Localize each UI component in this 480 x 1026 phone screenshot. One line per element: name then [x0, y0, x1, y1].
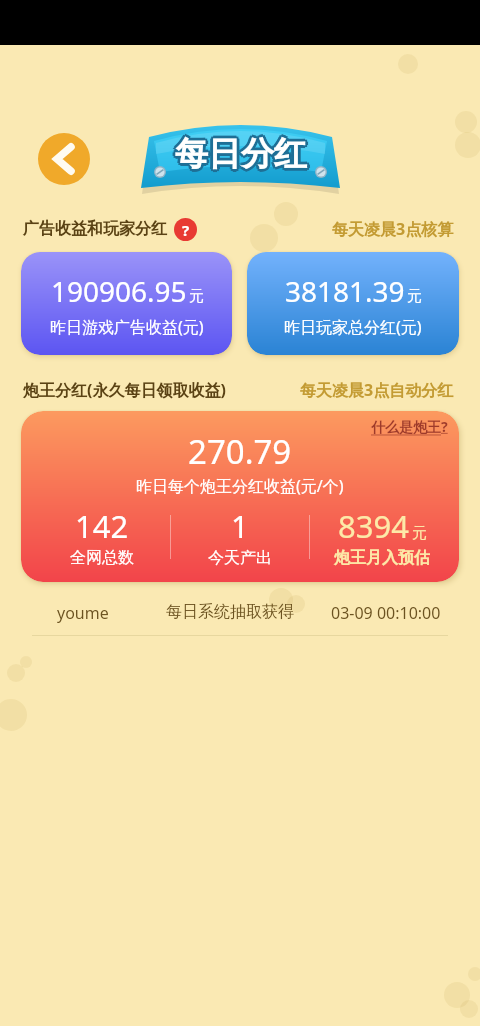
- staticText: 元: [189, 287, 204, 306]
- staticText: 1: [231, 505, 249, 547]
- staticText: 什么是炮王?: [371, 417, 448, 436]
- staticText: 8394: [338, 505, 409, 547]
- staticText: 每日分红: [175, 130, 307, 172]
- staticText: 每日分红: [173, 135, 305, 177]
- staticText: 03-09 00:10:00: [331, 602, 441, 624]
- staticText: 每日分红: [175, 131, 307, 173]
- staticText: 全网总数: [70, 548, 134, 568]
- staticText: 昨日游戏广告收益(元): [50, 316, 204, 338]
- staticText: 元: [407, 287, 422, 306]
- staticText: 每日分红: [172, 133, 304, 175]
- staticText: 炮王分红(永久每日领取收益): [23, 379, 226, 401]
- button[interactable]: 190906.95: [21, 252, 232, 355]
- staticText: 今天产出: [208, 548, 272, 568]
- staticText: 元: [412, 524, 427, 543]
- staticText: 每日分红: [177, 133, 309, 175]
- staticText: 炮王月入预估: [334, 548, 430, 568]
- staticText: 昨日每个炮王分红收益(元/个): [136, 475, 344, 497]
- staticText: 270.79: [188, 429, 292, 474]
- staticText: 每日分红: [175, 133, 307, 175]
- staticText: 142: [75, 505, 129, 547]
- button[interactable]: youme: [0, 592, 480, 644]
- button[interactable]: Back: [38, 133, 90, 185]
- staticText: 每日分红: [177, 135, 309, 177]
- staticText: 每天凌晨3点核算: [332, 218, 454, 240]
- staticText: 每日分红: [177, 131, 309, 173]
- button[interactable]: Help: [174, 218, 197, 241]
- staticText: 38181.39: [285, 272, 405, 310]
- staticText: 昨日玩家总分红(元): [284, 316, 422, 338]
- staticText: 每日分红: [175, 136, 307, 178]
- staticText: 每日分红: [173, 133, 305, 175]
- staticText: 190906.95: [51, 272, 187, 310]
- button[interactable]: 什么是炮王?: [21, 411, 459, 582]
- staticText: 每日分红: [173, 131, 305, 173]
- staticText: 每天凌晨3点自动分红: [300, 379, 454, 401]
- staticText: youme: [57, 602, 109, 624]
- staticText: ?: [182, 220, 190, 240]
- staticText: 广告收益和玩家分红: [23, 219, 167, 239]
- staticText: 每日分红: [175, 135, 307, 177]
- button[interactable]: 38181.39: [247, 252, 459, 355]
- staticText: 每日分红: [178, 133, 310, 175]
- staticText: 每日系统抽取获得: [166, 602, 294, 622]
